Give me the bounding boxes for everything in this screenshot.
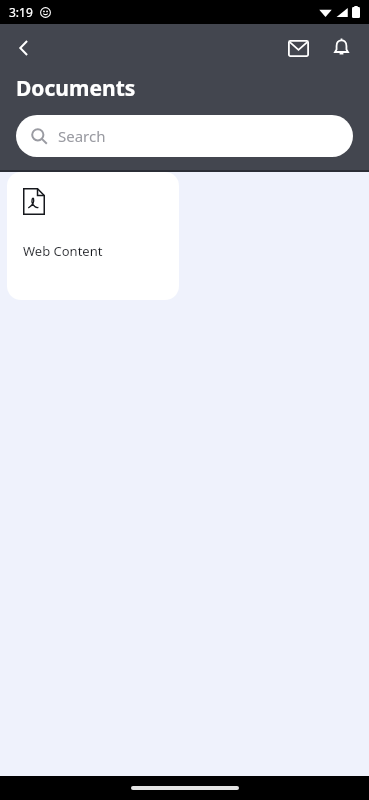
button[interactable]: Web Content (7, 172, 179, 300)
staticText: Search (58, 126, 106, 146)
button[interactable]: Back (4, 28, 44, 68)
button[interactable]: Search (16, 115, 353, 157)
staticText: Web Content (23, 242, 103, 260)
staticText: Documents (16, 74, 136, 103)
button[interactable]: Messages (278, 28, 318, 68)
button[interactable]: Notifications (321, 28, 361, 68)
staticText: 3:19 (9, 4, 33, 20)
